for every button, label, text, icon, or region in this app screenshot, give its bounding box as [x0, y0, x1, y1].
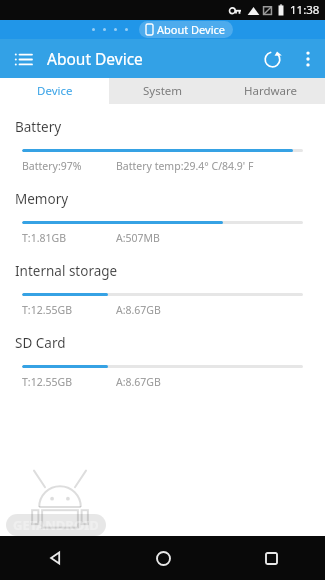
button[interactable]: Menu — [8, 44, 38, 74]
staticText: A:8.67GB — [116, 303, 161, 317]
button[interactable]: Back — [0, 536, 109, 580]
staticText: A:507MB — [116, 231, 160, 245]
button[interactable]: Home — [109, 536, 217, 580]
staticText: Hardware — [244, 83, 298, 99]
staticText: T:12.55GB — [22, 303, 72, 317]
staticText: T:1.81GB — [22, 231, 66, 245]
staticText: A:8.67GB — [116, 375, 161, 389]
staticText: Battery temp:29.4° C/84.9' F — [116, 159, 254, 173]
staticText: SD Card — [15, 334, 66, 352]
staticText: About Device — [47, 48, 143, 69]
staticText: Battery:97% — [22, 159, 82, 173]
button[interactable]: Refresh — [253, 40, 291, 78]
staticText: Internal storage — [15, 262, 118, 280]
button[interactable]: More options — [291, 42, 325, 76]
button[interactable]: Device — [0, 78, 109, 104]
staticText: 11:38 — [290, 2, 320, 18]
staticText: Memory — [15, 190, 69, 208]
staticText: About Device — [157, 22, 226, 37]
staticText: T:12.55GB — [22, 375, 72, 389]
staticText: Device — [37, 83, 73, 99]
staticText: Battery — [15, 118, 62, 136]
staticText: System — [143, 83, 183, 99]
staticText: GETANDROID — [13, 516, 99, 534]
button[interactable]: Hardware — [217, 78, 325, 104]
button[interactable]: Recents — [217, 536, 325, 580]
button[interactable]: System — [109, 78, 217, 104]
